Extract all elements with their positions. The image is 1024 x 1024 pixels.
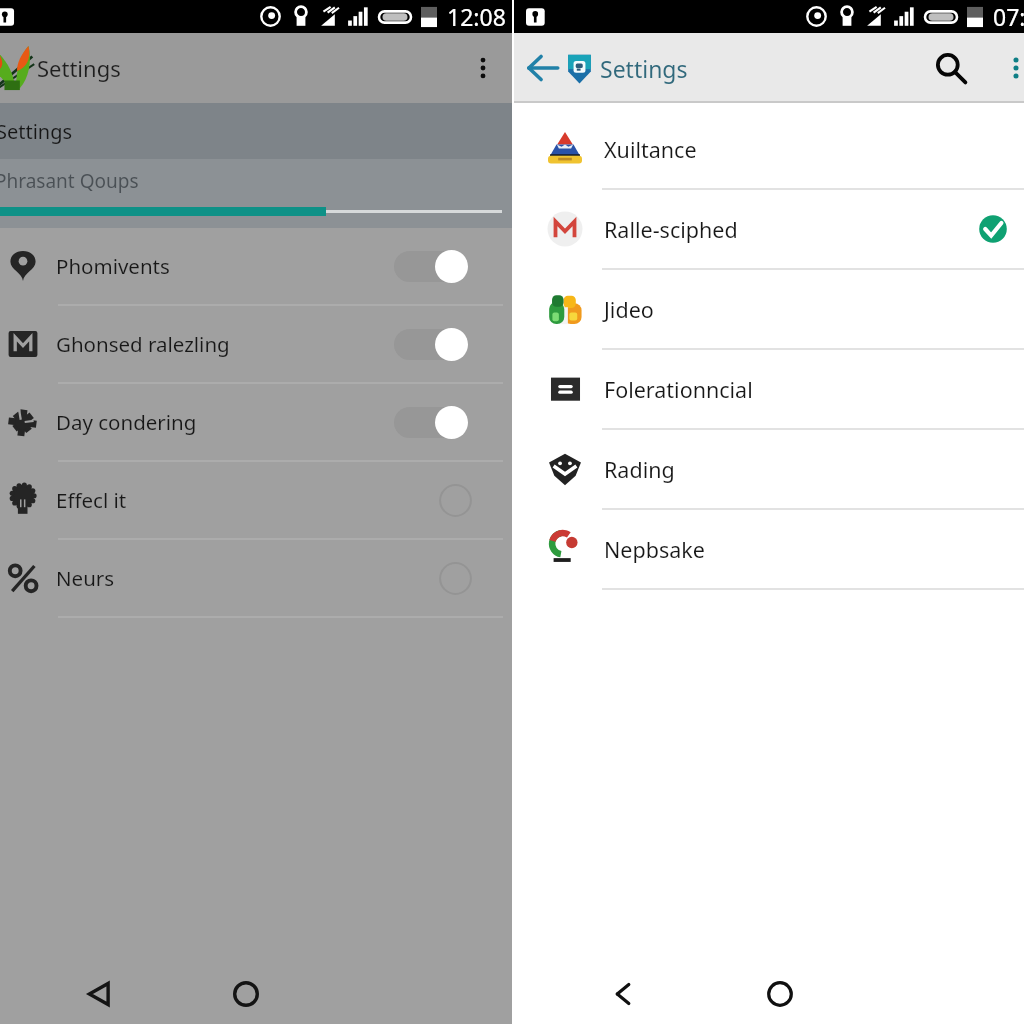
staticText: Day condering bbox=[56, 408, 197, 436]
button[interactable]: Toggle Ghonsed ralezling bbox=[394, 328, 468, 361]
button[interactable]: Day condering bbox=[0, 384, 512, 460]
staticText: Neurs bbox=[56, 564, 115, 592]
button[interactable]: Jideo bbox=[514, 270, 1024, 348]
staticText: Rading bbox=[604, 455, 675, 484]
staticText: Folerationncial bbox=[604, 375, 753, 404]
button[interactable]: Home bbox=[759, 973, 801, 1015]
button[interactable]: Home bbox=[225, 973, 267, 1015]
button[interactable]: Phomivents bbox=[0, 228, 512, 304]
button[interactable]: More options bbox=[998, 50, 1024, 86]
button[interactable]: Effecl it bbox=[0, 462, 512, 538]
button[interactable]: Ralle-sciphed bbox=[514, 190, 1024, 268]
button[interactable]: More options bbox=[462, 47, 504, 89]
staticText: 07:29 bbox=[993, 1, 1024, 32]
staticText: Settings bbox=[37, 53, 121, 83]
button[interactable]: Ghonsed ralezling bbox=[0, 306, 512, 382]
button[interactable]: Back bbox=[603, 973, 645, 1015]
staticText: Settings bbox=[0, 118, 73, 145]
staticText: Phrasant Qoups bbox=[0, 168, 139, 194]
button[interactable]: Neurs bbox=[0, 540, 512, 616]
staticText: Effecl it bbox=[56, 486, 127, 514]
staticText: Xuiltance bbox=[604, 135, 697, 164]
staticText: 12:08 bbox=[447, 1, 506, 32]
button[interactable]: Toggle Phomivents bbox=[394, 250, 468, 283]
button[interactable]: Toggle Effecl it bbox=[439, 484, 472, 517]
button[interactable]: Toggle Neurs bbox=[439, 562, 472, 595]
button[interactable]: Back bbox=[78, 973, 120, 1015]
staticText: Nepbsake bbox=[604, 535, 705, 564]
button[interactable]: Xuiltance bbox=[514, 110, 1024, 188]
staticText: Ghonsed ralezling bbox=[56, 330, 230, 358]
staticText: Jideo bbox=[604, 295, 654, 324]
button[interactable]: Folerationncial bbox=[514, 350, 1024, 428]
button[interactable]: Back bbox=[520, 45, 566, 91]
staticText: Settings bbox=[600, 53, 688, 84]
button[interactable]: Rading bbox=[514, 430, 1024, 508]
staticText: Ralle-sciphed bbox=[604, 215, 738, 244]
button[interactable]: Nepbsake bbox=[514, 510, 1024, 588]
button[interactable]: Toggle Day condering bbox=[394, 406, 468, 439]
staticText: Phomivents bbox=[56, 252, 170, 280]
button[interactable]: Search bbox=[928, 45, 974, 91]
